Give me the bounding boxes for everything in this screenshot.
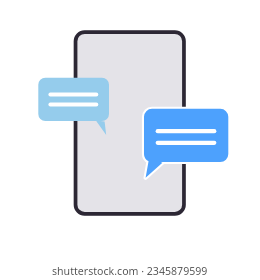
staticText: shutterstock.com · 2345879599 [52,264,208,278]
button[interactable]: Chat messages on a phone illustration [0,0,260,280]
